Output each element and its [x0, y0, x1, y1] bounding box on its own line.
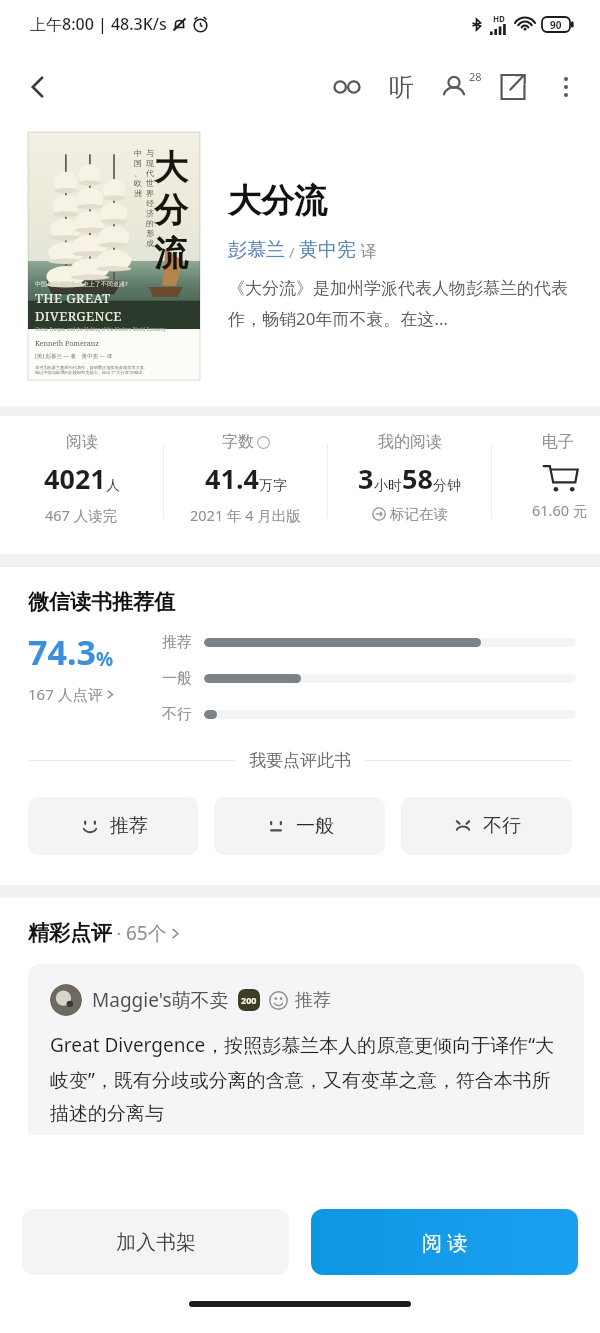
staticText: 万字	[259, 477, 287, 495]
staticText: 的	[146, 218, 154, 228]
staticText: 中国与欧洲为什么走上了不同道路?	[35, 280, 128, 288]
button[interactable]: 加入书架	[22, 1209, 289, 1275]
staticText: 人	[106, 477, 120, 495]
staticText: 大分流	[228, 180, 327, 222]
staticText: [美] 彭慕兰 — 著 黄中宪 — 译	[35, 352, 112, 360]
staticText: 3	[358, 460, 374, 497]
staticText: 4021	[44, 460, 106, 497]
staticText: 、	[134, 168, 142, 178]
staticText: 《大分流》是加州学派代表人物彭慕兰的代表作，畅销20年而不衰。在这…	[228, 278, 576, 330]
button[interactable]: 阅 读	[311, 1209, 578, 1275]
staticText: 界	[146, 188, 154, 198]
staticText: 代	[146, 168, 154, 178]
staticText: 分	[154, 189, 188, 232]
button[interactable]: 我的阅读	[328, 432, 491, 523]
staticText: 467 人读完	[45, 505, 118, 525]
button[interactable]: 无限卡	[320, 60, 374, 114]
staticText: 听	[389, 72, 414, 103]
button[interactable]: 推荐	[28, 797, 198, 855]
staticText: 90	[550, 18, 562, 32]
staticText: 推荐	[295, 989, 331, 1012]
staticText: 他以中国与欧洲的比较研究为核心，提出了“大分流”的概念。	[35, 370, 147, 376]
staticText: 现	[146, 158, 154, 168]
staticText: 我的阅读	[378, 432, 442, 452]
staticText: THE GREAT DIVERGENCE	[35, 289, 200, 325]
staticText: 彭慕兰	[228, 238, 285, 262]
staticText: Maggie's萌不卖	[92, 987, 229, 1013]
staticText: 阅 读	[422, 1229, 468, 1256]
staticText: 中	[134, 148, 142, 158]
staticText: 推荐	[110, 814, 148, 838]
staticText: 洲	[134, 188, 142, 198]
button[interactable]: 听书	[374, 60, 428, 114]
button[interactable]: 阅读	[0, 432, 163, 525]
staticText: 本书为彭慕兰教授的代表作，曾获费正清奖等多项学术大奖。	[35, 365, 149, 370]
staticText: 与	[146, 148, 154, 158]
staticText: 精彩点评	[28, 920, 112, 946]
staticText: 形	[146, 228, 154, 238]
staticText: 200	[241, 994, 257, 1006]
staticText: 不行	[162, 705, 192, 724]
staticText: 28	[469, 69, 482, 84]
staticText: 上午8:00 | 48.3K/s	[30, 13, 167, 35]
staticText: 阅读	[66, 432, 98, 452]
staticText: 加入书架	[116, 1230, 196, 1255]
button[interactable]: 一般	[214, 797, 385, 855]
staticText: 小时	[374, 477, 402, 495]
button[interactable]: 74.3	[28, 629, 162, 704]
staticText: China, Europe, and the Making of the Mod…	[35, 326, 166, 332]
button[interactable]: More options	[540, 61, 592, 113]
staticText: 译	[356, 240, 377, 262]
staticText: 65个	[126, 920, 167, 946]
staticText: 流	[154, 232, 188, 275]
staticText: 黄中宪	[299, 238, 356, 262]
button[interactable]: 精彩点评	[28, 920, 182, 946]
staticText: 167 人点评	[28, 684, 103, 704]
staticText: 推荐	[162, 633, 192, 652]
staticText: 经	[146, 198, 154, 208]
staticText: 41.4	[205, 460, 259, 497]
button[interactable]: 在读的好友	[428, 58, 486, 116]
button[interactable]: 电子	[492, 432, 600, 520]
staticText: 大	[154, 146, 188, 189]
staticText: 电子	[542, 432, 574, 452]
button[interactable]: Share	[486, 60, 540, 114]
staticText: 世	[146, 178, 154, 188]
staticText: Great Divergence，按照彭慕兰本人的原意更倾向于译作“大岐变”，既…	[50, 1032, 566, 1125]
staticText: ·	[112, 922, 126, 945]
button[interactable]: 字数	[164, 432, 327, 525]
staticText: Kenneth Pomeranz	[35, 339, 99, 349]
staticText: 字数	[222, 432, 254, 452]
button[interactable]: 不行	[401, 797, 572, 855]
staticText: %	[96, 646, 114, 672]
staticText: 不行	[483, 814, 521, 838]
staticText: 标记在读	[390, 505, 448, 523]
staticText: 58	[402, 460, 433, 497]
staticText: 2021 年 4 月出版	[190, 505, 301, 525]
staticText: 济	[146, 208, 154, 218]
staticText: 一般	[296, 814, 334, 838]
staticText: HD	[493, 13, 505, 24]
staticText: /	[285, 242, 299, 262]
staticText: 分钟	[433, 477, 461, 495]
staticText: 国	[134, 158, 142, 168]
button[interactable]: Back	[14, 63, 62, 111]
staticText: 微信读书推荐值	[28, 589, 175, 615]
button[interactable]: Maggie's萌不卖	[28, 964, 584, 1135]
staticText: 61.60 元	[532, 500, 588, 520]
staticText: 一般	[162, 669, 192, 688]
staticText: 成	[146, 238, 154, 248]
staticText: 74.3	[28, 629, 96, 675]
staticText: 我要点评此书	[249, 750, 351, 771]
staticText: 欧	[134, 178, 142, 188]
